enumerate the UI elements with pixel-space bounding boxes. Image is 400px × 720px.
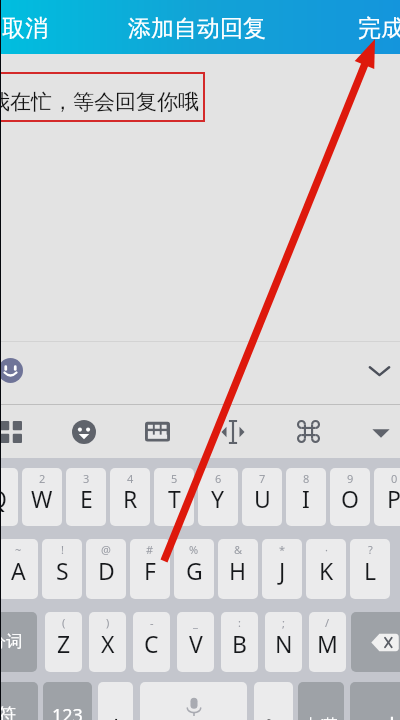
staticText: #	[146, 542, 154, 557]
staticText: 2	[39, 471, 46, 486]
button[interactable]: ，	[98, 682, 133, 720]
staticText: 完成	[358, 14, 400, 43]
button[interactable]: 0	[374, 468, 400, 526]
staticText: ，	[107, 704, 125, 720]
button[interactable]: 7	[242, 468, 282, 526]
button[interactable]: 3	[66, 468, 106, 526]
staticText: P	[387, 483, 400, 514]
staticText: )	[106, 615, 110, 630]
button[interactable]: 1	[0, 468, 18, 526]
staticText: B	[232, 628, 247, 659]
staticText: U	[254, 483, 271, 514]
button[interactable]: Emoji	[62, 405, 106, 458]
staticText: 符	[0, 704, 16, 720]
button[interactable]: ?	[350, 539, 390, 599]
button[interactable]: ;	[265, 612, 302, 672]
button[interactable]: #	[130, 539, 170, 599]
staticText: -	[150, 615, 154, 630]
button[interactable]: Backspace	[351, 612, 400, 672]
button[interactable]: )	[89, 612, 126, 672]
button[interactable]: *	[262, 539, 302, 599]
button[interactable]: More	[359, 405, 400, 458]
button[interactable]: 4	[110, 468, 150, 526]
staticText: N	[275, 628, 293, 659]
button[interactable]: 分词	[0, 612, 37, 672]
staticText: W	[31, 483, 53, 514]
button[interactable]: Collapse keyboard	[357, 348, 400, 392]
staticText: C	[144, 628, 159, 659]
button[interactable]: -	[133, 612, 170, 672]
staticText: &	[234, 542, 243, 557]
button[interactable]: (	[45, 612, 82, 672]
button[interactable]: ~	[0, 539, 38, 599]
button[interactable]: Keyboard layout	[135, 405, 179, 458]
button[interactable]: 。	[254, 682, 293, 720]
staticText: @	[101, 542, 111, 557]
staticText: 中/英	[304, 714, 338, 720]
staticText: ;	[282, 615, 285, 630]
button[interactable]: !	[42, 539, 82, 599]
button[interactable]: 中/英	[298, 682, 344, 720]
button[interactable]: :	[221, 612, 258, 672]
staticText: J	[279, 555, 286, 586]
staticText: 8	[303, 471, 310, 486]
button[interactable]: ·	[306, 539, 346, 599]
staticText: 123	[52, 703, 83, 720]
staticText: G	[186, 555, 203, 586]
button[interactable]: 9	[330, 468, 370, 526]
staticText: 分词	[0, 632, 22, 652]
staticText: S	[56, 555, 69, 586]
staticText: 7	[259, 471, 266, 486]
staticText: 0	[391, 471, 398, 486]
staticText: 添加自动回复	[128, 14, 266, 43]
staticText: R	[123, 483, 138, 514]
staticText: (	[62, 615, 66, 630]
button[interactable]: 5	[154, 468, 194, 526]
button[interactable]: %	[174, 539, 214, 599]
button[interactable]: @	[86, 539, 126, 599]
staticText: 5	[171, 471, 178, 486]
staticText: /	[325, 615, 330, 630]
button[interactable]: &	[218, 539, 258, 599]
button[interactable]: 符	[0, 682, 38, 720]
staticText: 取消	[2, 14, 48, 43]
staticText: Q	[0, 483, 7, 514]
staticText: !	[61, 542, 64, 557]
staticText: I	[302, 483, 310, 514]
button[interactable]: 取消	[0, 2, 58, 55]
button[interactable]: Move cursor	[211, 405, 255, 458]
staticText: X	[101, 628, 115, 659]
button[interactable]: 6	[198, 468, 238, 526]
button[interactable]: 123	[43, 682, 92, 720]
staticText: V	[189, 628, 203, 659]
staticText: 4	[127, 471, 134, 486]
staticText: A	[11, 555, 26, 586]
staticText: E	[80, 483, 93, 514]
other: Voice input	[186, 697, 202, 717]
staticText: _	[193, 615, 198, 630]
button[interactable]: _	[177, 612, 214, 672]
other: Backspace	[371, 633, 399, 652]
staticText: O	[341, 483, 359, 514]
staticText: D	[98, 555, 115, 586]
staticText: 3	[83, 471, 90, 486]
staticText: 6	[215, 471, 222, 486]
button[interactable]: 2	[22, 468, 62, 526]
button[interactable]: Shortcuts	[286, 405, 330, 458]
button[interactable]: 完成	[348, 2, 400, 55]
button[interactable]: Emoji	[0, 348, 32, 392]
button[interactable]: /	[309, 612, 346, 672]
staticText: %	[189, 542, 199, 557]
button[interactable]: 8	[286, 468, 326, 526]
staticText: ·	[325, 542, 328, 557]
staticText: Z	[57, 628, 71, 659]
staticText: ~	[15, 542, 22, 557]
staticText: ?	[368, 542, 373, 557]
button[interactable]: Enter	[350, 682, 400, 720]
staticText: 9	[347, 471, 354, 486]
other: Enter	[373, 712, 395, 720]
button[interactable]: Voice input	[140, 682, 247, 720]
staticText: K	[319, 555, 334, 586]
staticText: L	[364, 555, 377, 586]
button[interactable]: Panels	[0, 405, 33, 458]
